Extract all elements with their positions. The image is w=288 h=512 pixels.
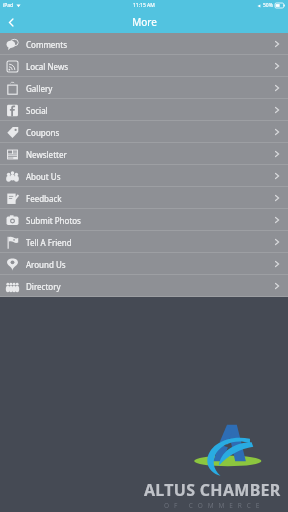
button[interactable]: Newsletter xyxy=(0,143,288,165)
button[interactable]: Submit Photos xyxy=(0,209,288,231)
button[interactable]: Around Us xyxy=(0,253,288,275)
button[interactable]: Coupons xyxy=(0,121,288,143)
staticText: Newsletter xyxy=(26,149,67,160)
staticText: ALTUS CHAMBER xyxy=(144,479,281,501)
staticText: Feedback xyxy=(26,193,62,204)
staticText: O F C O M M E R C E xyxy=(164,501,261,510)
staticText: Tell A Friend xyxy=(26,237,72,248)
button[interactable]: Comments xyxy=(0,33,288,55)
staticText: Comments xyxy=(26,39,68,50)
staticText: Local News xyxy=(26,61,69,72)
button[interactable]: Back xyxy=(0,11,22,33)
staticText: Directory xyxy=(26,281,61,292)
staticText: More xyxy=(132,15,157,29)
button[interactable]: Social xyxy=(0,99,288,121)
staticText: Around Us xyxy=(26,259,66,270)
staticText: About Us xyxy=(26,171,61,182)
staticText: iPad xyxy=(3,2,14,9)
staticText: 11:15 AM xyxy=(133,2,155,9)
button[interactable]: Local News xyxy=(0,55,288,77)
button[interactable]: Tell A Friend xyxy=(0,231,288,253)
staticText: Social xyxy=(26,105,48,116)
staticText: Coupons xyxy=(26,127,60,138)
staticText: Gallery xyxy=(26,83,53,94)
button[interactable]: Directory xyxy=(0,275,288,297)
button[interactable]: Gallery xyxy=(0,77,288,99)
staticText: Submit Photos xyxy=(26,215,81,226)
button[interactable]: Feedback xyxy=(0,187,288,209)
staticText: 50% xyxy=(263,2,273,9)
button[interactable]: About Us xyxy=(0,165,288,187)
